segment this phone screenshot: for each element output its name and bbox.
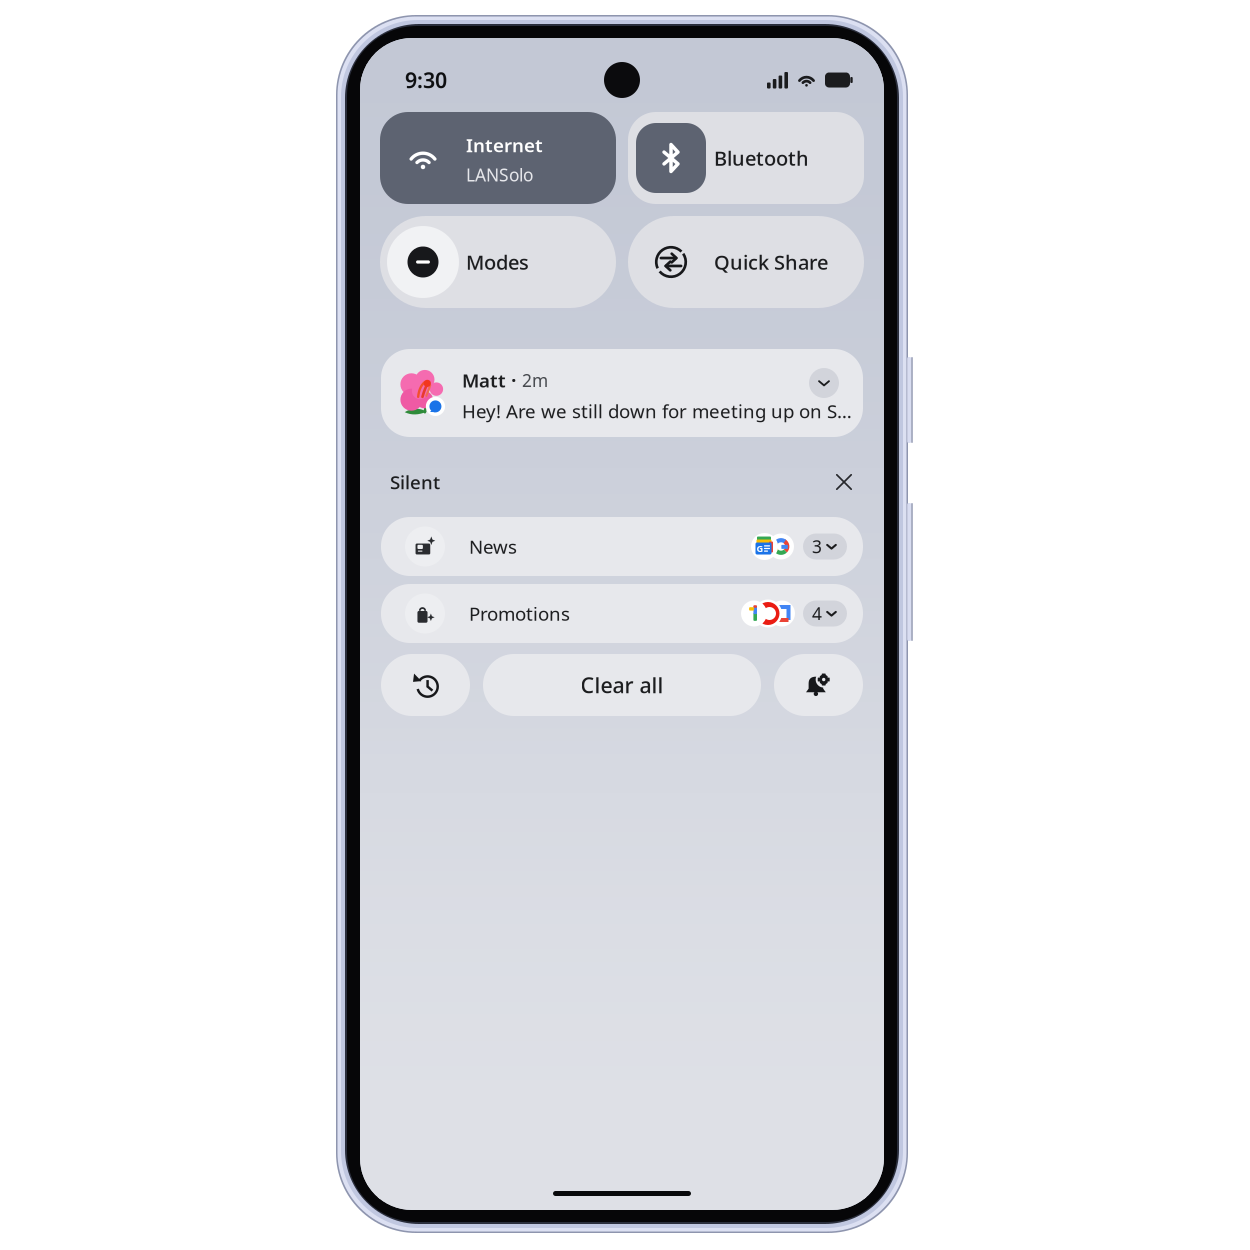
button[interactable]: Promotions: [381, 584, 863, 643]
staticText: 9:30: [405, 66, 447, 94]
button[interactable]: Clear all: [483, 654, 761, 716]
staticText: 2m: [522, 369, 548, 392]
staticText: Clear all: [580, 671, 663, 699]
staticText: G: [756, 542, 763, 555]
staticText: Internet: [466, 133, 543, 157]
button[interactable]: Notification history: [381, 654, 470, 716]
staticText: Matt: [462, 368, 506, 393]
staticText: Promotions: [469, 601, 570, 626]
staticText: Quick Share: [714, 249, 828, 275]
button[interactable]: Matt: [381, 349, 863, 437]
staticText: Bluetooth: [714, 145, 809, 171]
button[interactable]: Internet: [380, 112, 616, 204]
staticText: 3: [812, 535, 822, 558]
staticText: Silent: [390, 470, 440, 494]
button[interactable]: Bluetooth: [628, 112, 864, 204]
staticText: Modes: [466, 249, 529, 275]
button[interactable]: Quick Share: [628, 216, 864, 308]
button[interactable]: News: [381, 517, 863, 576]
staticText: News: [469, 534, 517, 559]
staticText: ·: [511, 367, 517, 394]
staticText: LANSolo: [466, 163, 533, 186]
button[interactable]: Dismiss silent notifications: [825, 463, 863, 501]
staticText: Hey! Are we still down for meeting up on…: [462, 399, 852, 423]
button[interactable]: Notification settings: [774, 654, 863, 716]
staticText: 4: [812, 602, 822, 625]
button[interactable]: Modes: [380, 216, 616, 308]
